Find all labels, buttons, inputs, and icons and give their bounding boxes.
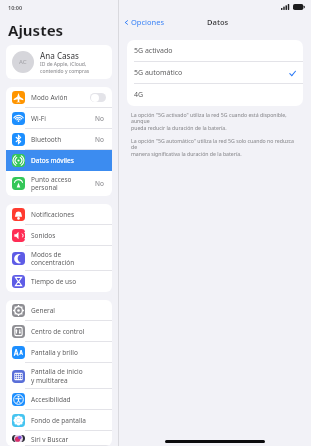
staticText: 4G <box>134 90 296 100</box>
staticText: Siri y Buscar <box>31 435 69 442</box>
staticText: y multitarea <box>31 376 68 385</box>
button[interactable]: Bluetooth <box>6 129 112 150</box>
staticText: Modos de concentración <box>31 250 106 267</box>
button[interactable]: Wi-Fi <box>6 108 112 129</box>
button[interactable]: Fondo de pantalla <box>6 410 112 431</box>
button[interactable]: Accesibilidad <box>6 389 112 410</box>
staticText: Ajustes <box>8 20 64 40</box>
button[interactable]: 5G automático <box>127 62 303 84</box>
staticText: Notificaciones <box>31 210 75 219</box>
staticText: General <box>31 306 55 315</box>
button[interactable]: Punto acceso personal <box>6 171 112 196</box>
button[interactable]: Pantalla de inicio <box>6 363 112 389</box>
button[interactable]: General <box>6 300 112 321</box>
button[interactable]: 4G <box>127 84 303 106</box>
staticText: Opciones <box>131 17 164 27</box>
button[interactable]: Sonidos <box>6 225 112 246</box>
staticText: La opción "5G activado" utiliza la red 5… <box>131 111 299 132</box>
staticText: ID de Apple, iCloud, contenido y compras <box>40 61 90 74</box>
button[interactable]: Centro de control <box>6 321 112 342</box>
button[interactable]: Opciones <box>124 17 164 27</box>
staticText: No <box>95 135 104 144</box>
button[interactable]: Modo Avión <box>90 93 106 102</box>
button[interactable]: 5G activado <box>127 40 303 62</box>
staticText: Fondo de pantalla <box>31 416 86 425</box>
button[interactable]: Tiempo de uso <box>6 271 112 292</box>
button[interactable]: Notificaciones <box>6 204 112 225</box>
staticText: No <box>95 179 104 188</box>
staticText: Pantalla de inicio <box>31 367 83 376</box>
staticText: Ana Casas <box>40 50 79 61</box>
button[interactable]: Pantalla y brillo <box>6 342 112 363</box>
staticText: 5G activado <box>134 46 296 56</box>
staticText: No <box>95 114 104 123</box>
button[interactable]: Datos móviles <box>6 150 112 171</box>
staticText: Datos <box>207 17 229 27</box>
staticText: Tiempo de uso <box>31 277 77 286</box>
staticText: Modo Avión <box>31 93 68 102</box>
button[interactable]: AC <box>6 45 112 79</box>
staticText: Datos móviles <box>31 156 74 165</box>
staticText: Bluetooth <box>31 135 62 144</box>
staticText: Wi-Fi <box>31 114 46 123</box>
button[interactable]: Modos de concentración <box>6 246 112 271</box>
staticText: Centro de control <box>31 327 85 336</box>
staticText: Punto acceso personal <box>31 175 95 192</box>
button[interactable]: Modo Avión <box>6 87 112 108</box>
staticText: La opción "5G automático" utiliza la red… <box>131 137 299 158</box>
staticText: AC <box>19 58 27 66</box>
staticText: 5G automático <box>134 68 289 78</box>
staticText: 10:00 <box>8 4 23 11</box>
staticText: Accesibilidad <box>31 395 71 404</box>
staticText: Sonidos <box>31 231 56 240</box>
staticText: Pantalla y brillo <box>31 348 78 357</box>
button[interactable]: Siri y Buscar <box>6 431 112 446</box>
